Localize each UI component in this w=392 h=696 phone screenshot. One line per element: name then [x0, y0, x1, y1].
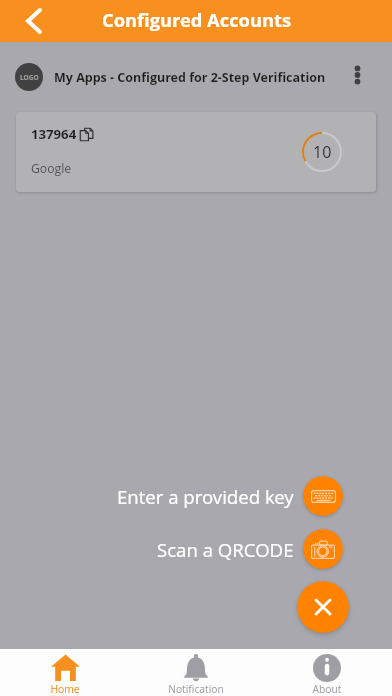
button[interactable]: More options: [344, 56, 371, 96]
button[interactable]: Scan a QRCODE: [0, 537, 294, 561]
staticText: Notification: [168, 682, 224, 696]
staticText: 10: [313, 141, 332, 163]
button[interactable]: 137964: [16, 112, 376, 192]
button[interactable]: Back: [10, 0, 57, 42]
button[interactable]: Notification: [130, 649, 261, 696]
button[interactable]: Enter a provided key: [0, 484, 294, 508]
staticText: Home: [50, 682, 80, 696]
staticText: Enter a provided key: [117, 484, 294, 508]
staticText: LOGO: [20, 73, 39, 82]
staticText: Configured Accounts: [102, 7, 291, 32]
button[interactable]: Close menu: [297, 581, 349, 633]
button[interactable]: Scan a QRCODE: [303, 529, 343, 569]
button[interactable]: Home: [0, 649, 130, 696]
button[interactable]: Enter a provided key: [303, 476, 343, 516]
staticText: My Apps - Configured for 2-Step Verifica…: [54, 69, 326, 86]
button[interactable]: About: [261, 649, 392, 696]
staticText: 137964: [31, 125, 77, 143]
staticText: Scan a QRCODE: [157, 537, 294, 561]
staticText: About: [312, 682, 342, 696]
staticText: Google: [31, 160, 72, 177]
